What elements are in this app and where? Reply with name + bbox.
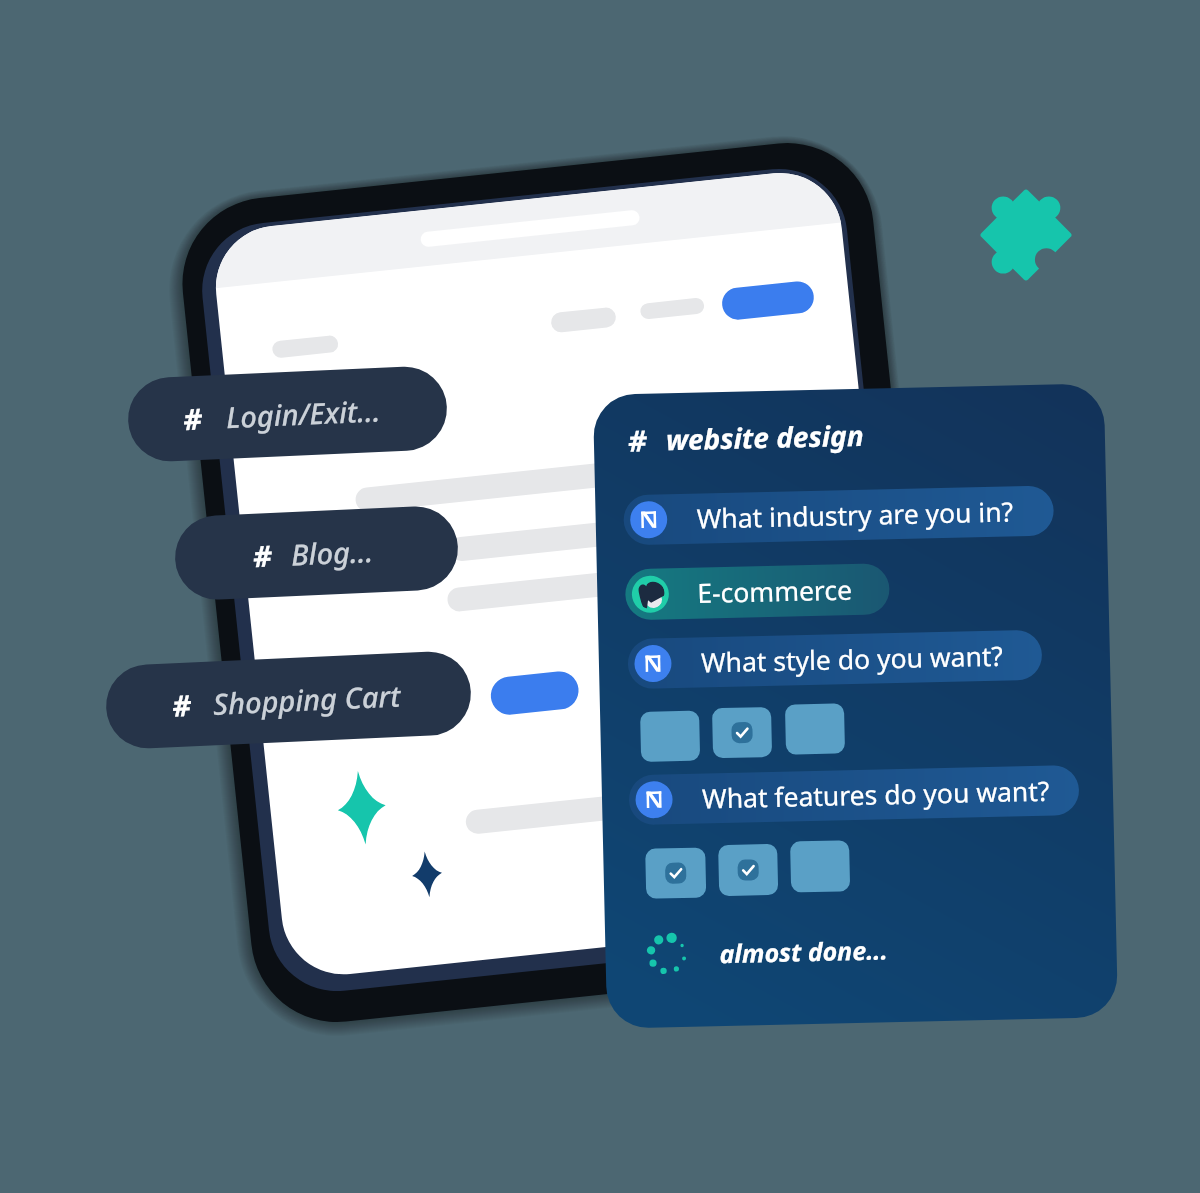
button[interactable]: Login/Exit tag — [126, 365, 449, 463]
button[interactable]: Puzzle piece — [995, 204, 1057, 266]
button[interactable]: What industry are you in? — [628, 489, 1058, 539]
button[interactable]: Blog tag — [173, 505, 460, 601]
button[interactable]: Feature option 2, selected — [715, 841, 774, 892]
button[interactable]: Feature option 1, selected — [642, 843, 702, 893]
button[interactable]: Style option 2, selected — [712, 704, 771, 754]
button[interactable]: Shopping Cart tag — [104, 650, 473, 750]
button[interactable]: Feature option 3 — [787, 839, 846, 890]
button[interactable]: What style do you want? — [629, 633, 1043, 683]
button[interactable]: Style option 3 — [785, 702, 844, 752]
button[interactable]: Style option 1 — [640, 706, 699, 756]
button[interactable]: What features do you want? — [627, 769, 1077, 819]
button[interactable]: E-commerce — [628, 563, 892, 614]
